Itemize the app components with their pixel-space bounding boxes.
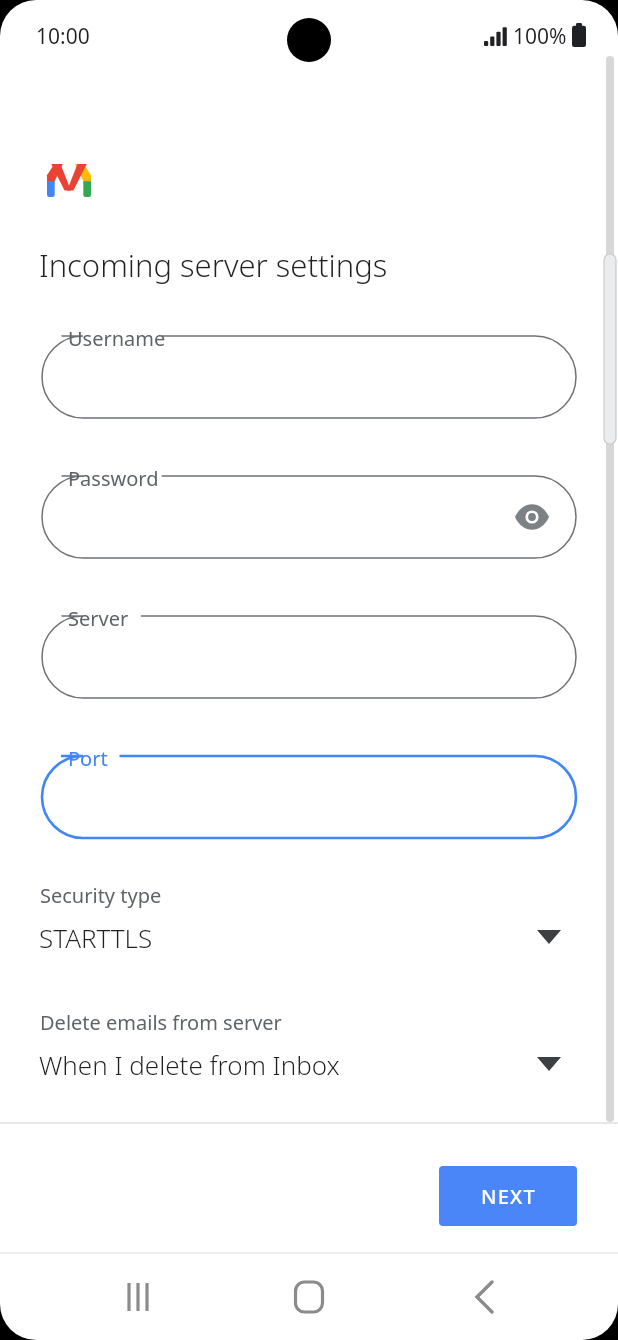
staticText: Security type [40, 882, 162, 909]
staticText: Delete emails from server [40, 1009, 282, 1036]
button[interactable]: Security type [0, 882, 618, 982]
button[interactable]: Back [437, 1262, 527, 1332]
staticText: Username [68, 325, 166, 352]
staticText: NEXT [481, 1183, 536, 1210]
staticText: Incoming server settings [39, 244, 388, 286]
button[interactable]: Recents [93, 1262, 183, 1332]
staticText: STARTTLS [39, 920, 153, 955]
staticText: 10:00 [36, 22, 90, 51]
button[interactable]: Password [42, 476, 576, 558]
staticText: Server [68, 605, 129, 632]
button[interactable]: Server [42, 616, 576, 698]
staticText: When I delete from Inbox [39, 1047, 340, 1082]
button[interactable]: Username [42, 336, 576, 418]
staticText: 100% [513, 22, 567, 51]
staticText: Password [68, 465, 159, 492]
button[interactable]: Delete emails from server [0, 1009, 618, 1109]
button[interactable]: Show password [510, 495, 554, 539]
button[interactable]: Home [264, 1262, 354, 1332]
button[interactable]: NEXT [439, 1166, 577, 1226]
staticText: Port [68, 745, 108, 772]
button[interactable]: Port [42, 756, 576, 838]
